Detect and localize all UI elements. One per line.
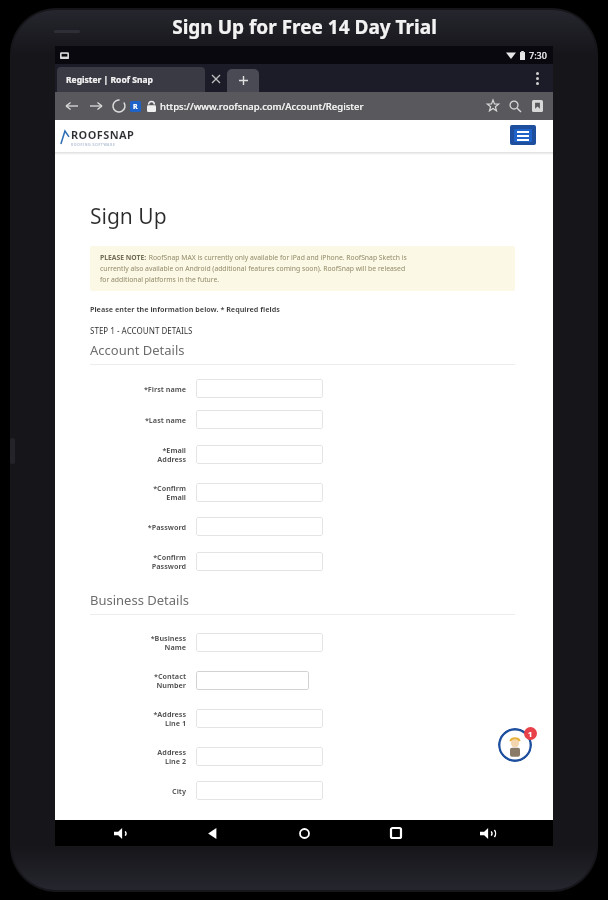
button[interactable]: Recent apps [370, 820, 422, 846]
staticText: https://www.roofsnap.com/Account/Registe… [160, 100, 364, 113]
button[interactable]: Search [504, 95, 526, 117]
button[interactable]: R [130, 101, 141, 112]
button[interactable]: New tab [227, 69, 259, 92]
button[interactable]: More options [527, 68, 547, 88]
staticText: *Password [147, 522, 186, 532]
button[interactable]: *Email Address [90, 435, 515, 473]
staticText: Account Details [90, 341, 185, 359]
staticText: Sign Up [90, 202, 167, 231]
button[interactable]: *Business Name [90, 623, 515, 661]
button[interactable]: City [90, 775, 515, 806]
button[interactable]: Register | Roof Snap [57, 67, 205, 92]
button[interactable]: Volume up [461, 820, 513, 846]
staticText: for additional platforms in the future. [100, 275, 220, 284]
button[interactable]: *Contact Number [90, 661, 515, 699]
staticText: 7:30 [529, 49, 547, 61]
button[interactable]: *Confirm Password [90, 542, 515, 580]
staticText: ROOFSNAP [71, 127, 135, 142]
button[interactable]: *First name [90, 373, 515, 404]
staticText: Address Line 2 [157, 747, 186, 766]
button[interactable]: Bookmark page [482, 95, 504, 117]
button[interactable]: Back [186, 820, 238, 846]
button[interactable]: *Password [90, 511, 515, 542]
staticText: *Last name [144, 415, 186, 425]
button[interactable]: Address Line 2 [90, 737, 515, 775]
staticText: *Email Address [157, 445, 186, 464]
button[interactable]: Home [278, 820, 330, 846]
button[interactable]: Close tab [207, 70, 225, 88]
button[interactable]: Reload [108, 95, 130, 117]
button[interactable]: Menu [510, 125, 536, 145]
staticText: *Confirm Email [153, 483, 186, 502]
staticText: STEP 1 - ACCOUNT DETAILS [90, 325, 193, 336]
button[interactable]: Back [60, 94, 84, 118]
staticText: PLEASE NOTE: [100, 253, 147, 262]
button[interactable]: *Confirm Email [90, 473, 515, 511]
staticText: *Confirm Password [151, 552, 186, 571]
button[interactable]: Bookmarks [526, 95, 548, 117]
button[interactable]: *Last name [90, 404, 515, 435]
button[interactable]: Chat with us [498, 728, 532, 762]
staticText: Please enter the information below. * Re… [90, 304, 280, 314]
staticText: currently also available on Android (add… [100, 264, 406, 273]
button[interactable]: Volume down [95, 820, 147, 846]
button[interactable]: *Address Line 1 [90, 699, 515, 737]
staticText: RoofSnap MAX is currently only available… [147, 253, 407, 262]
staticText: *First name [143, 384, 186, 394]
staticText: 1 [528, 729, 533, 739]
staticText: Sign Up for Free 14 Day Trial [172, 14, 437, 40]
staticText: R [133, 102, 138, 112]
staticText: *Address Line 1 [153, 709, 186, 728]
staticText: ROOFING SOFTWARE [71, 142, 116, 147]
staticText: Register | Roof Snap [66, 74, 153, 86]
staticText: *Business Name [150, 633, 186, 652]
staticText: *Contact Number [154, 671, 186, 690]
button[interactable]: Forward [84, 94, 108, 118]
staticText: Business Details [90, 591, 190, 609]
button[interactable]: ROOFSNAP [60, 127, 135, 147]
staticText: City [172, 786, 186, 796]
